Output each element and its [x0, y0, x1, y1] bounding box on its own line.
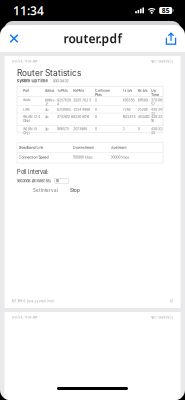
staticText: Up	[44, 115, 48, 119]
staticText: Up	[44, 127, 48, 131]
staticText: 3524 4998	[73, 107, 90, 111]
staticText: 18	[56, 179, 59, 183]
staticText: 611590	[138, 98, 148, 102]
staticText: 9/17/24, 11:34 AM	[11, 315, 37, 319]
staticText: Connection Speed	[19, 155, 49, 159]
staticText: Up Time	[151, 88, 159, 97]
staticText: Port	[23, 88, 29, 93]
staticText: Collision Pkts	[95, 88, 110, 97]
staticText: 430:34:32	[151, 107, 163, 116]
staticText: Poll Interval:	[17, 169, 49, 175]
staticText: WLAN (5 GHz)	[23, 127, 37, 135]
staticText: Status	[44, 88, 54, 93]
staticText: Upstream	[111, 145, 127, 150]
staticText: WAN	[23, 98, 31, 102]
staticText: 1816575	[57, 127, 69, 131]
staticText: 453482	[138, 115, 150, 119]
staticText: Tx b/s	[123, 88, 133, 93]
staticText: 9257628 4	[57, 98, 71, 106]
staticText: Stop	[70, 188, 80, 193]
staticText: 456756	[123, 98, 135, 102]
staticText: RxPkts	[73, 88, 84, 93]
staticText: 7246	[123, 107, 131, 111]
staticText: 0	[95, 98, 97, 102]
staticText: System Up Time	[16, 78, 47, 83]
staticText: Nat / Statistics	[150, 315, 173, 319]
staticText: Seconds (at least 5s)	[16, 179, 50, 183]
staticText: LAN	[23, 107, 30, 111]
staticText: 3752812 6	[57, 115, 73, 119]
staticText: TxPkts	[57, 88, 68, 93]
staticText: router.pdf	[63, 30, 121, 46]
staticText: 2025 762 5	[73, 98, 91, 102]
staticText: 30000 kbps	[111, 155, 130, 159]
staticText: 430:34:32	[52, 78, 68, 83]
button[interactable]: Set Interval	[31, 186, 59, 195]
staticText: 8230 6014	[73, 115, 89, 119]
staticText: 0	[138, 127, 140, 131]
staticText: 0	[95, 115, 97, 119]
staticText: Broadband Link	[19, 145, 44, 150]
staticText: 1622474	[123, 115, 136, 119]
staticText: 25298	[138, 107, 148, 111]
staticText: 0	[123, 127, 125, 131]
button[interactable]: Close	[1, 25, 27, 52]
staticText: 11:34	[13, 2, 44, 18]
staticText: 0	[95, 127, 97, 131]
staticText: 192.168.0.1/sta_system.html	[11, 299, 54, 303]
staticText: 0	[95, 107, 97, 111]
staticText: 85	[162, 6, 170, 15]
staticText: Up	[44, 107, 48, 111]
staticText: 370:08:57	[151, 98, 163, 106]
staticText: WANsuE	[44, 98, 55, 106]
staticText: 159900 kbps	[73, 155, 93, 159]
button[interactable]: Share	[158, 25, 184, 52]
staticText: 430:32:39	[151, 127, 163, 135]
staticText: 430:33:16	[151, 115, 163, 123]
staticText: Set Interval	[33, 188, 58, 193]
button[interactable]: Stop	[68, 186, 81, 195]
staticText: Downstream	[73, 145, 94, 150]
staticText: 9/17/24, 11:34 AM	[11, 59, 37, 63]
staticText: 1/2	[169, 299, 173, 303]
staticText: 6258905	[57, 107, 71, 111]
staticText: Nat / Statistics	[150, 59, 173, 63]
staticText: Router Statistics	[17, 68, 81, 78]
staticText: Rx b/s	[138, 88, 148, 93]
staticText: WLAN (2.4 GHz)	[23, 115, 40, 123]
staticText: 2073989	[73, 127, 87, 131]
